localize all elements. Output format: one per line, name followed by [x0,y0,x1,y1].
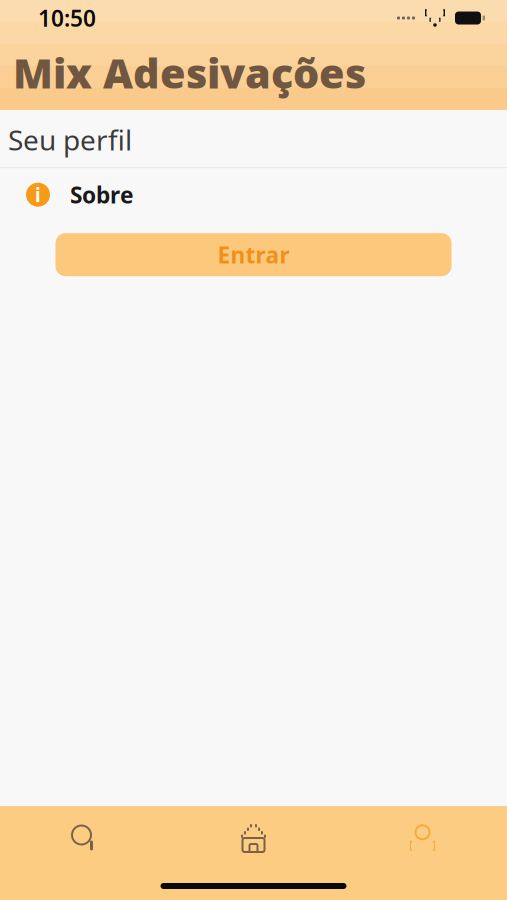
button[interactable]: Entrar [55,233,451,276]
staticText: Sobre [70,180,134,210]
staticText: Mix Adesivações [13,45,366,100]
button[interactable]: i [0,168,507,221]
button[interactable]: Buscar [0,809,169,867]
staticText: Entrar [217,240,289,270]
staticText: i [35,182,41,207]
staticText: Seu perfil [8,121,132,158]
button[interactable]: Início [169,809,338,867]
button[interactable]: Perfil [338,809,507,867]
staticText: 10:50 [38,3,96,33]
